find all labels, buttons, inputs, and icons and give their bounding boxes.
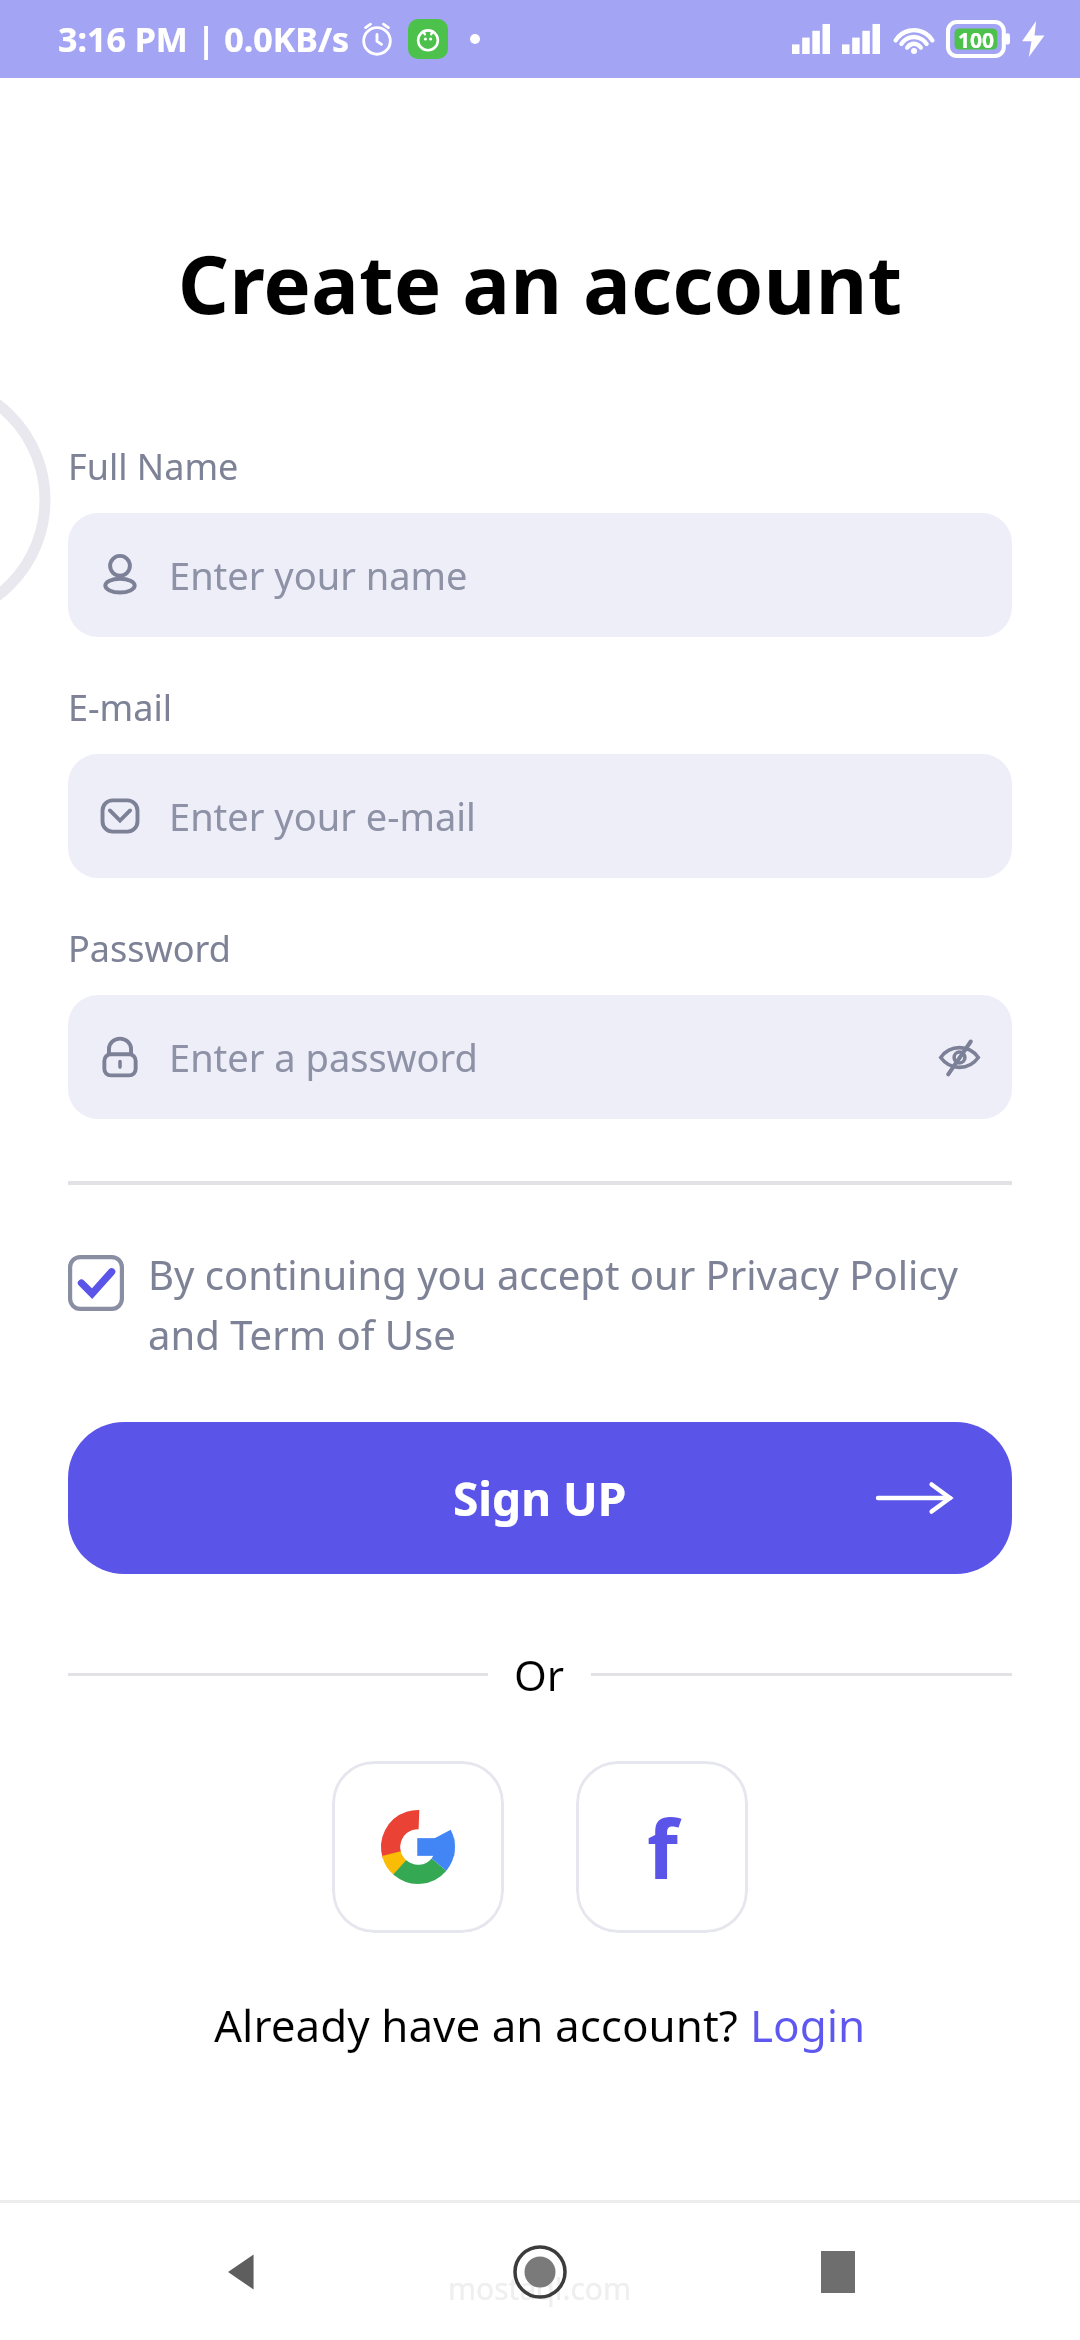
staticText: 100 <box>958 25 995 54</box>
staticText: Or <box>514 1646 565 1703</box>
button[interactable]: Enter your name <box>68 513 1012 637</box>
staticText: Full Name <box>68 442 239 491</box>
staticText: mostaql.com <box>448 2268 632 2309</box>
staticText: Already have an account? <box>214 1995 750 2055</box>
staticText: Login <box>750 1995 866 2055</box>
button[interactable]: Recent apps <box>783 2217 893 2327</box>
staticText: Sign UP <box>453 1467 627 1530</box>
staticText: Create an account <box>0 228 1080 337</box>
staticText: E-mail <box>68 683 173 732</box>
button[interactable]: Home <box>485 2217 595 2327</box>
staticText: Password <box>68 924 231 973</box>
staticText: Enter a password <box>169 1031 936 1083</box>
button[interactable]: Enter a password <box>68 995 1012 1119</box>
button[interactable]: Show password <box>936 1034 983 1081</box>
button[interactable]: Sign up with Google <box>332 1761 504 1933</box>
staticText: Enter your e-mail <box>169 790 983 842</box>
staticText: f <box>647 1793 678 1902</box>
button[interactable]: Back <box>188 2217 298 2327</box>
button[interactable]: By continuing you accept our Privacy Pol… <box>68 1247 1012 1362</box>
button[interactable]: Sign up with Facebook <box>576 1761 748 1933</box>
button[interactable]: Sign UP <box>68 1422 1012 1574</box>
staticText: Enter your name <box>169 549 983 601</box>
staticText: 3:16 PM | 0.0KB/s <box>58 16 350 62</box>
button[interactable]: Enter your e-mail <box>68 754 1012 878</box>
staticText: By continuing you accept our Privacy Pol… <box>148 1247 1012 1362</box>
button[interactable]: Already have an account? <box>0 1995 1080 2055</box>
